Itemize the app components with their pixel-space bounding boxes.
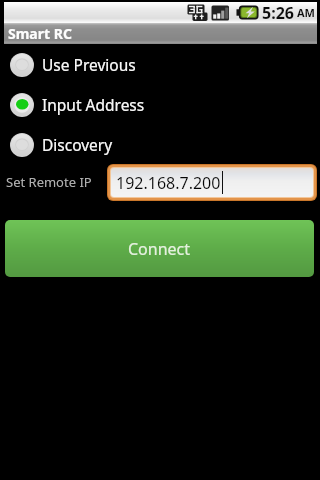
staticText: Smart RC — [8, 24, 72, 43]
staticText: Set Remote IP — [6, 173, 92, 191]
staticText: Use Previous — [42, 54, 136, 75]
staticText: Input Address — [42, 94, 145, 115]
staticText: Connect — [128, 238, 191, 260]
button[interactable]: Input Address — [0, 92, 153, 117]
button[interactable]: Use Previous — [0, 52, 144, 77]
other: 3G network — [185, 4, 209, 21]
button[interactable]: Discovery — [0, 132, 121, 157]
other: Signal strength — [210, 5, 230, 21]
button[interactable]: Connect — [5, 220, 314, 277]
staticText: AM — [297, 5, 315, 20]
staticText: 5:26 — [262, 2, 294, 22]
staticText: 192.168.7.200 — [116, 172, 221, 194]
other: Battery charging — [236, 5, 259, 20]
staticText: Discovery — [42, 134, 113, 155]
button[interactable]: 192.168.7.200 — [111, 168, 313, 197]
